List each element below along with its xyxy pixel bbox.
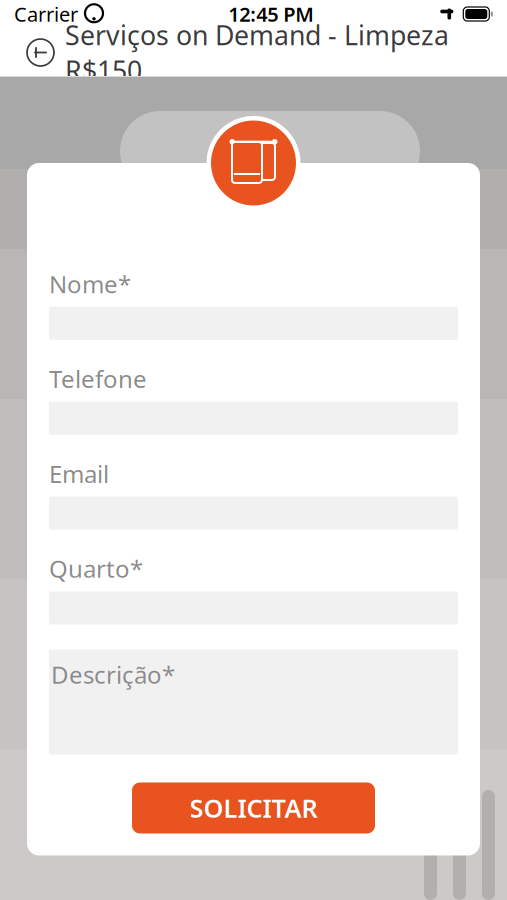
staticText: Nome*: [49, 268, 131, 300]
button[interactable]: Serviços on Demand - Limpeza R$150: [0, 28, 461, 77]
button[interactable]: SOLICITAR: [132, 782, 375, 833]
staticText: Descrição*: [51, 658, 175, 690]
staticText: Carrier: [14, 1, 78, 27]
staticText: Quarto*: [49, 553, 143, 584]
staticText: Email: [49, 458, 109, 490]
staticText: Serviços on Demand - Limpeza R$150: [65, 17, 449, 88]
staticText: Telefone: [49, 363, 147, 395]
staticText: SOLICITAR: [189, 791, 317, 825]
staticText: 12:45 PM: [228, 1, 314, 27]
